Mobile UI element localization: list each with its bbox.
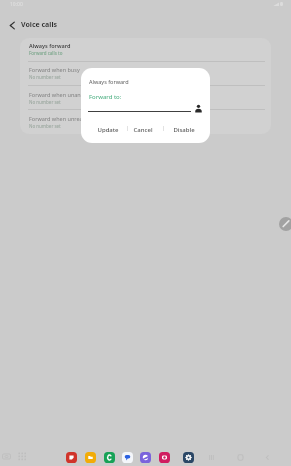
button[interactable]: Internet — [140, 452, 151, 463]
staticText: Voice calls — [21, 20, 57, 30]
button[interactable]: Navigate up — [2, 15, 22, 35]
staticText: Forward when unreachable — [29, 115, 100, 122]
button[interactable]: All apps — [17, 451, 27, 461]
button[interactable]: Forward when busy — [20, 61, 271, 85]
staticText: No number set — [29, 74, 61, 80]
staticText: Disable — [173, 126, 195, 134]
button[interactable]: Choose contact — [194, 104, 203, 113]
button[interactable]: Forward when unreachable — [20, 109, 271, 134]
button[interactable]: Home — [236, 453, 245, 462]
staticText: Always forward — [29, 42, 71, 49]
staticText: 10:00 — [10, 1, 23, 8]
button[interactable]: Disable — [163, 121, 204, 138]
staticText: Forward when busy — [29, 66, 80, 73]
staticText: Always forward — [89, 78, 129, 85]
button[interactable]: Edge panel — [279, 217, 291, 231]
button[interactable]: Settings — [183, 452, 194, 463]
staticText: Forward to: — [89, 93, 122, 101]
button[interactable]: Gallery — [66, 452, 77, 463]
button[interactable]: Forward when unanswered — [20, 85, 271, 109]
button[interactable]: Phone — [104, 452, 115, 463]
button[interactable]: Recents — [2, 452, 11, 461]
staticText: Forward calls to — [29, 50, 63, 56]
staticText: Forward when unanswered — [29, 91, 100, 98]
staticText: No number set — [29, 99, 61, 105]
button[interactable]: Cancel — [125, 121, 161, 138]
staticText: Update — [97, 126, 119, 134]
button[interactable]: Update — [88, 121, 127, 138]
button[interactable]: Messages — [122, 452, 133, 463]
button[interactable]: My Files — [85, 452, 96, 463]
button[interactable]: Camera — [159, 452, 170, 463]
staticText: No number set — [29, 123, 61, 129]
staticText: Cancel — [133, 126, 153, 134]
button[interactable]: Always forward — [20, 38, 271, 61]
